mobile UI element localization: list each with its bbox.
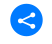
button[interactable]: Share — [0, 0, 52, 44]
